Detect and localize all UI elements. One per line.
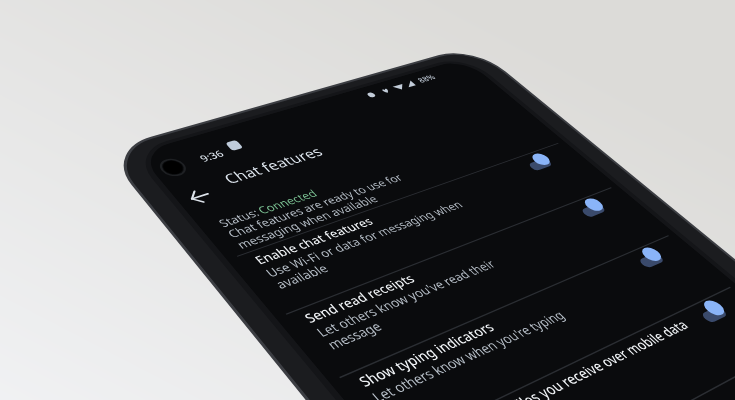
button[interactable]: Phone showing Chat features settings	[0, 0, 735, 400]
